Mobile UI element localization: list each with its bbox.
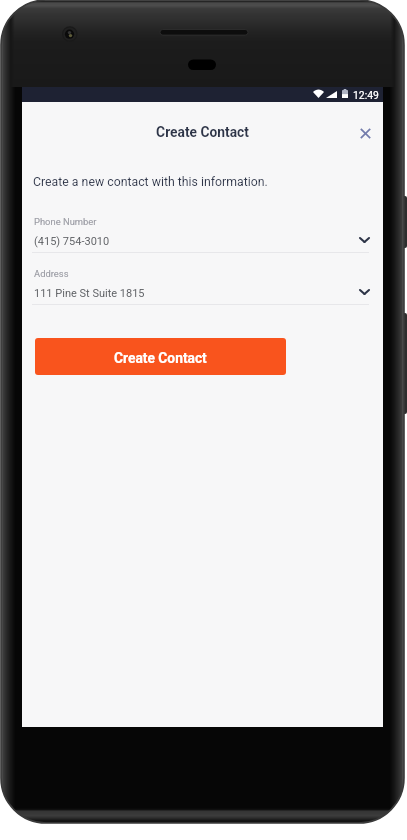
staticText: Create a new contact with this informati… xyxy=(33,175,268,189)
button[interactable]: Close xyxy=(351,119,379,147)
button[interactable]: Phone Number xyxy=(32,216,369,256)
staticText: 111 Pine St Suite 1815 xyxy=(34,287,145,300)
staticText: Address xyxy=(34,268,69,279)
staticText: Create Contact xyxy=(22,124,383,140)
staticText: Create Contact xyxy=(114,350,207,366)
button[interactable]: Create Contact xyxy=(35,338,286,375)
staticText: (415) 754-3010 xyxy=(34,235,110,248)
staticText: 12:49 xyxy=(353,89,379,101)
button[interactable]: Address xyxy=(32,268,369,308)
staticText: Phone Number xyxy=(34,216,97,227)
